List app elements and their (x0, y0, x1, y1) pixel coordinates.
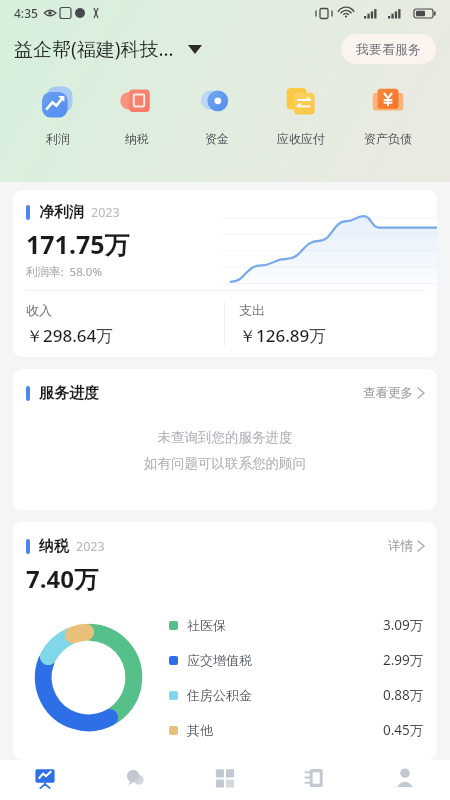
staticText: 应交增值税 (187, 652, 252, 668)
button[interactable]: 净利润 (13, 190, 437, 357)
button[interactable]: 服务进度 (13, 369, 437, 510)
staticText: 支出 (239, 302, 265, 318)
staticText: 收入 (26, 302, 52, 318)
staticText: 益企帮(福建)科技… (14, 36, 174, 62)
button[interactable]: 纳税 (111, 82, 163, 148)
button[interactable]: 应收应付 (271, 82, 331, 148)
staticText: 资产负债 (364, 131, 412, 146)
button[interactable]: 住房公积金 (169, 679, 424, 711)
staticText: 社医保 (187, 617, 226, 633)
staticText: 详情 (388, 538, 413, 554)
staticText: 2.99万 (383, 651, 424, 669)
staticText: 171.75万 (26, 227, 130, 261)
staticText: 资金 (205, 131, 229, 146)
button[interactable]: 资产负债 (358, 82, 418, 148)
button[interactable]: 工作台 (180, 760, 270, 800)
staticText: 如有问题可以联系您的顾问 (26, 455, 424, 472)
staticText: 纳税 (125, 131, 149, 146)
staticText: 应收应付 (277, 131, 325, 146)
button[interactable]: 资金 (191, 82, 243, 148)
button[interactable]: 应交增值税 (169, 644, 424, 676)
staticText: 服务进度 (39, 384, 99, 403)
staticText: 3.09万 (383, 616, 424, 634)
button[interactable]: 其他 (169, 714, 424, 746)
button[interactable]: 社医保 (169, 609, 424, 641)
staticText: 查看更多 (363, 385, 413, 401)
staticText: 2023 (91, 204, 120, 221)
button[interactable]: 我的 (360, 760, 450, 800)
staticText: 其他 (187, 722, 213, 738)
button[interactable]: 查看更多 (355, 383, 424, 403)
staticText: 净利润 (39, 203, 84, 222)
button[interactable]: 报表 (0, 760, 90, 800)
button[interactable]: 利润 (32, 82, 84, 148)
staticText: 7.40万 (26, 562, 98, 595)
button[interactable]: 消息 (90, 760, 180, 800)
staticText: 0.45万 (383, 721, 424, 739)
staticText: ￥126.89万 (239, 324, 327, 347)
button[interactable]: 我要看服务 (341, 34, 436, 64)
staticText: 利润率: 58.0% (26, 264, 102, 280)
staticText: 利润 (46, 131, 70, 146)
staticText: 未查询到您的服务进度 (26, 429, 424, 446)
staticText: 4:35 (14, 5, 38, 21)
button[interactable]: 详情 (380, 536, 424, 556)
staticText: 0.88万 (383, 686, 424, 704)
staticText: 我要看服务 (356, 41, 421, 57)
button[interactable]: 通讯录 (270, 760, 360, 800)
button[interactable]: 益企帮(福建)科技… (14, 32, 202, 66)
button[interactable]: 纳税 (13, 522, 437, 760)
staticText: 住房公积金 (187, 687, 252, 703)
staticText: ￥298.64万 (26, 324, 114, 347)
staticText: 纳税 (39, 537, 69, 556)
staticText: 2023 (76, 538, 105, 555)
